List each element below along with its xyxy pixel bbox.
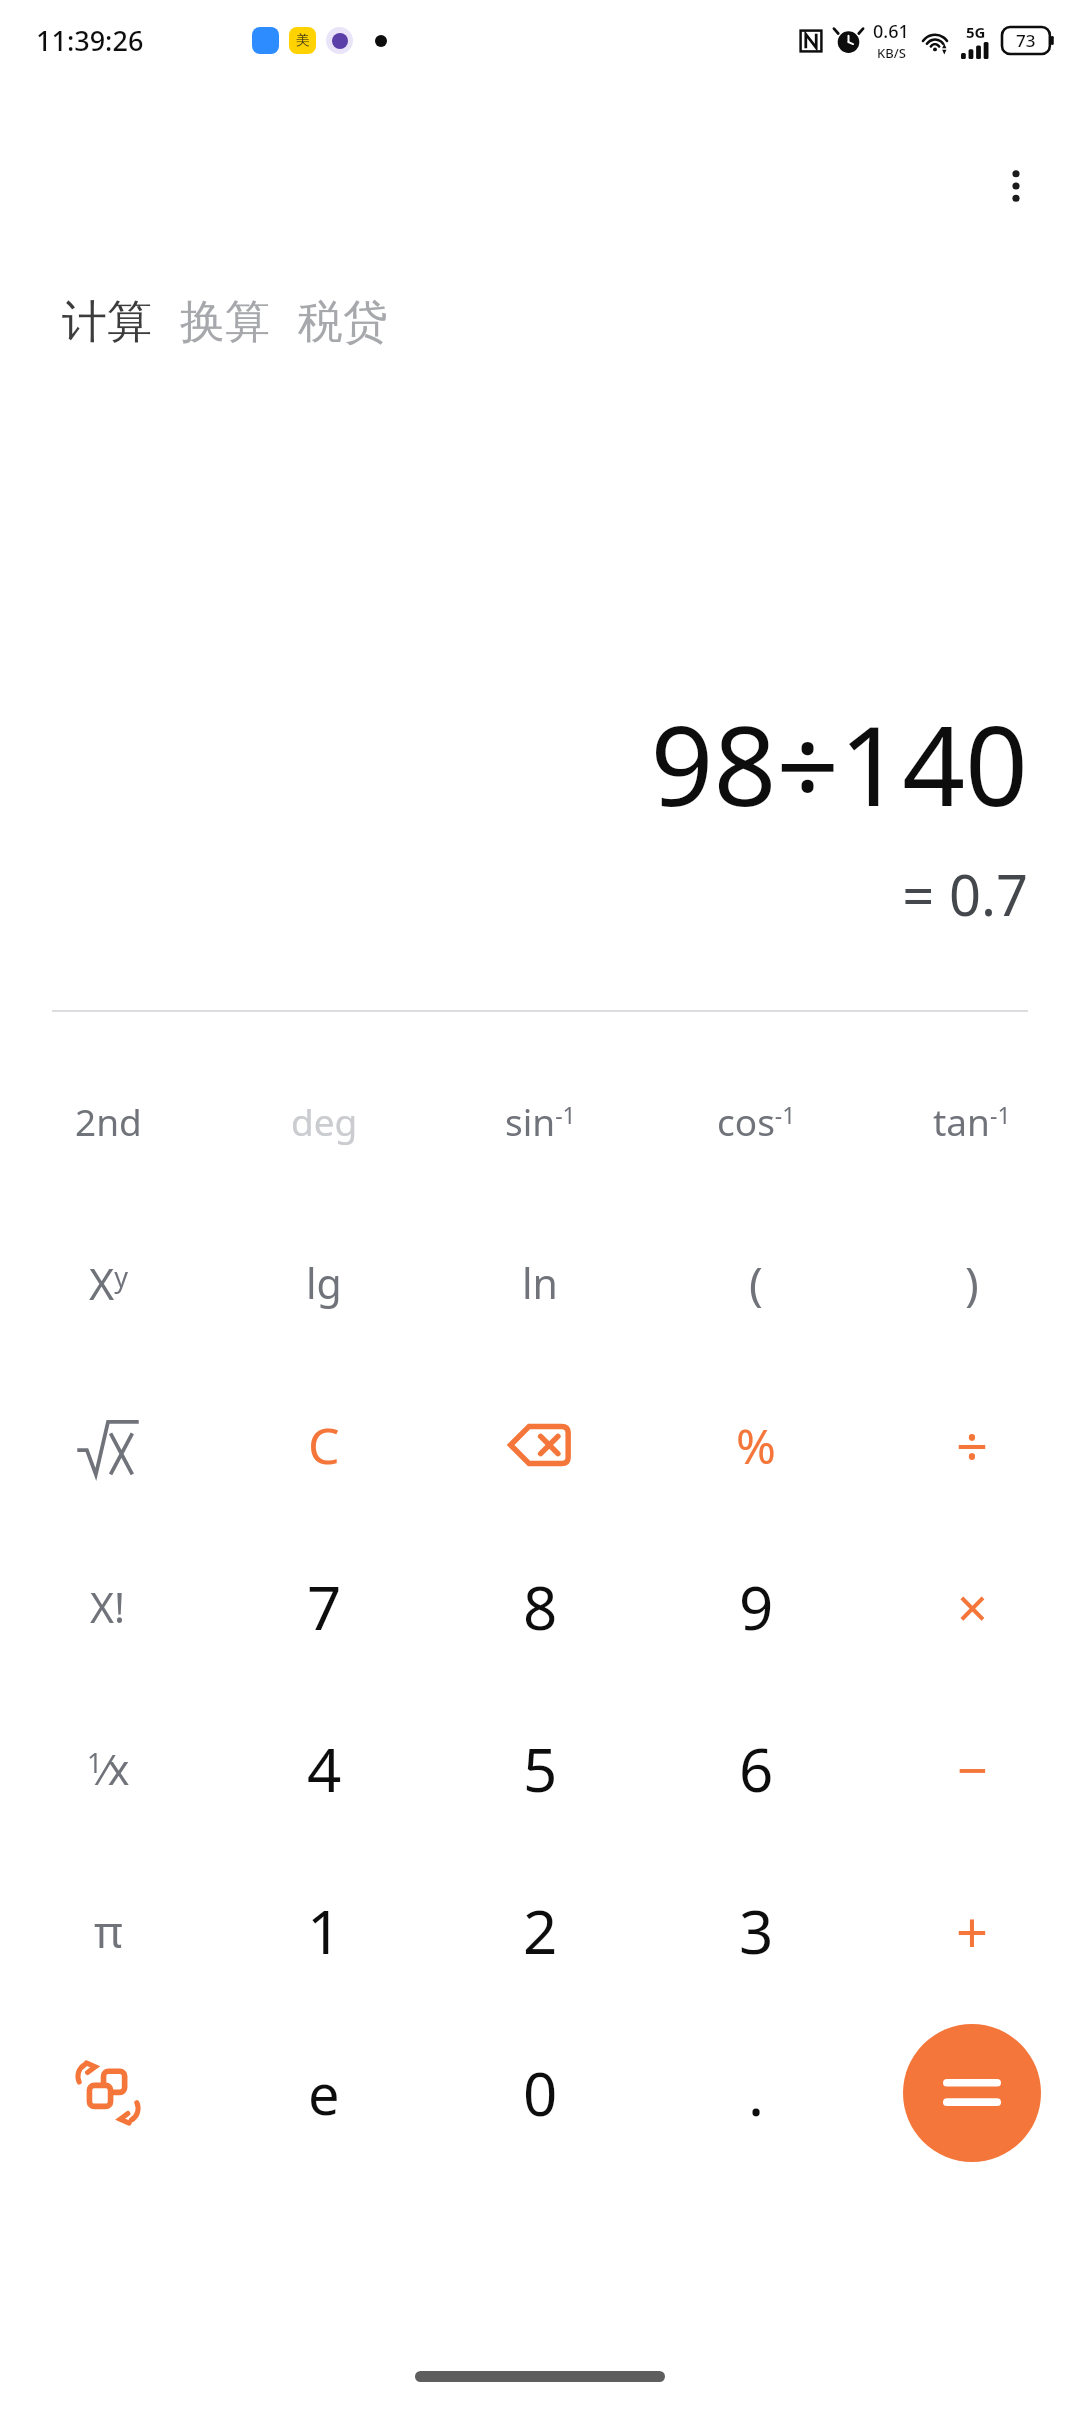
button[interactable]: tan-1 bbox=[864, 1040, 1080, 1202]
staticText: + bbox=[956, 1893, 989, 1969]
staticText: lg bbox=[306, 1255, 342, 1311]
button[interactable]: 5 bbox=[432, 1688, 648, 1850]
button[interactable]: e bbox=[216, 2012, 432, 2174]
button[interactable]: 4 bbox=[216, 1688, 432, 1850]
staticText: 计算 bbox=[62, 294, 152, 351]
button[interactable]: Square root bbox=[0, 1364, 216, 1526]
staticText: 11:39:26 bbox=[36, 22, 144, 59]
staticText: ÷ bbox=[956, 1407, 989, 1483]
staticText: X! bbox=[90, 1579, 126, 1635]
staticText: tan-1 bbox=[933, 1096, 1011, 1146]
button[interactable]: 换算 bbox=[166, 288, 284, 357]
button[interactable]: C bbox=[216, 1364, 432, 1526]
staticText: 税贷 bbox=[298, 294, 388, 351]
staticText: e bbox=[308, 2055, 340, 2131]
button[interactable]: Backspace bbox=[432, 1364, 648, 1526]
button[interactable]: cos-1 bbox=[648, 1040, 864, 1202]
button[interactable]: ln bbox=[432, 1202, 648, 1364]
button[interactable]: sin-1 bbox=[432, 1040, 648, 1202]
button[interactable]: × bbox=[864, 1526, 1080, 1688]
button[interactable]: Equals bbox=[903, 2024, 1041, 2162]
button[interactable]: 0 bbox=[432, 2012, 648, 2174]
staticText: 5 bbox=[523, 1728, 558, 1810]
staticText: 1⁄x bbox=[87, 1741, 130, 1797]
staticText: 7 bbox=[307, 1566, 342, 1648]
button[interactable]: ( bbox=[648, 1202, 864, 1364]
button[interactable]: 1⁄x bbox=[0, 1688, 216, 1850]
staticText: 4 bbox=[307, 1728, 342, 1810]
staticText: 8 bbox=[523, 1566, 558, 1648]
staticText: 2nd bbox=[75, 1096, 142, 1146]
staticText: C bbox=[308, 1411, 340, 1479]
button[interactable]: % bbox=[648, 1364, 864, 1526]
button[interactable]: 8 bbox=[432, 1526, 648, 1688]
button[interactable]: ) bbox=[864, 1202, 1080, 1364]
staticText: 98÷140 bbox=[650, 688, 1028, 838]
staticText: × bbox=[957, 1570, 988, 1644]
button[interactable]: − bbox=[864, 1688, 1080, 1850]
staticText: 5G bbox=[966, 22, 986, 42]
button[interactable]: 2nd bbox=[0, 1040, 216, 1202]
button[interactable]: 税贷 bbox=[284, 288, 402, 357]
staticText: 2 bbox=[523, 1890, 558, 1972]
staticText: = 0.7 bbox=[902, 856, 1028, 932]
staticText: 73 bbox=[1016, 29, 1036, 52]
button[interactable]: More options bbox=[978, 148, 1054, 224]
button[interactable]: 9 bbox=[648, 1526, 864, 1688]
staticText: 0 bbox=[523, 2052, 558, 2134]
staticText: Xy bbox=[89, 1254, 128, 1313]
button[interactable]: ÷ bbox=[864, 1364, 1080, 1526]
button[interactable]: lg bbox=[216, 1202, 432, 1364]
staticText: KB/S bbox=[877, 44, 906, 62]
staticText: 3 bbox=[739, 1890, 774, 1972]
staticText: π bbox=[94, 1901, 123, 1961]
staticText: 换算 bbox=[180, 294, 270, 351]
staticText: cos-1 bbox=[717, 1096, 796, 1146]
staticText: sin-1 bbox=[505, 1096, 576, 1146]
staticText: ) bbox=[965, 1252, 979, 1315]
staticText: % bbox=[736, 1413, 776, 1478]
button[interactable]: . bbox=[648, 2012, 864, 2174]
staticText: 9 bbox=[739, 1566, 774, 1648]
button[interactable]: 计算 bbox=[48, 288, 166, 357]
staticText: 1 bbox=[307, 1890, 342, 1972]
button[interactable]: + bbox=[864, 1850, 1080, 2012]
staticText: deg bbox=[291, 1096, 358, 1146]
staticText: . bbox=[748, 2052, 765, 2134]
button[interactable]: deg bbox=[216, 1040, 432, 1202]
button[interactable]: X! bbox=[0, 1526, 216, 1688]
button[interactable]: Convert bbox=[0, 2012, 216, 2174]
button[interactable]: 7 bbox=[216, 1526, 432, 1688]
button[interactable]: π bbox=[0, 1850, 216, 2012]
button[interactable]: 1 bbox=[216, 1850, 432, 2012]
staticText: 0.61 bbox=[873, 19, 909, 44]
button[interactable]: 2 bbox=[432, 1850, 648, 2012]
button[interactable]: 6 bbox=[648, 1688, 864, 1850]
staticText: − bbox=[957, 1732, 988, 1806]
button[interactable]: Xy bbox=[0, 1202, 216, 1364]
button[interactable]: 3 bbox=[648, 1850, 864, 2012]
staticText: 6 bbox=[739, 1728, 774, 1810]
staticText: ln bbox=[522, 1255, 558, 1311]
staticText: ( bbox=[749, 1252, 763, 1315]
staticText: 美 bbox=[296, 32, 310, 50]
